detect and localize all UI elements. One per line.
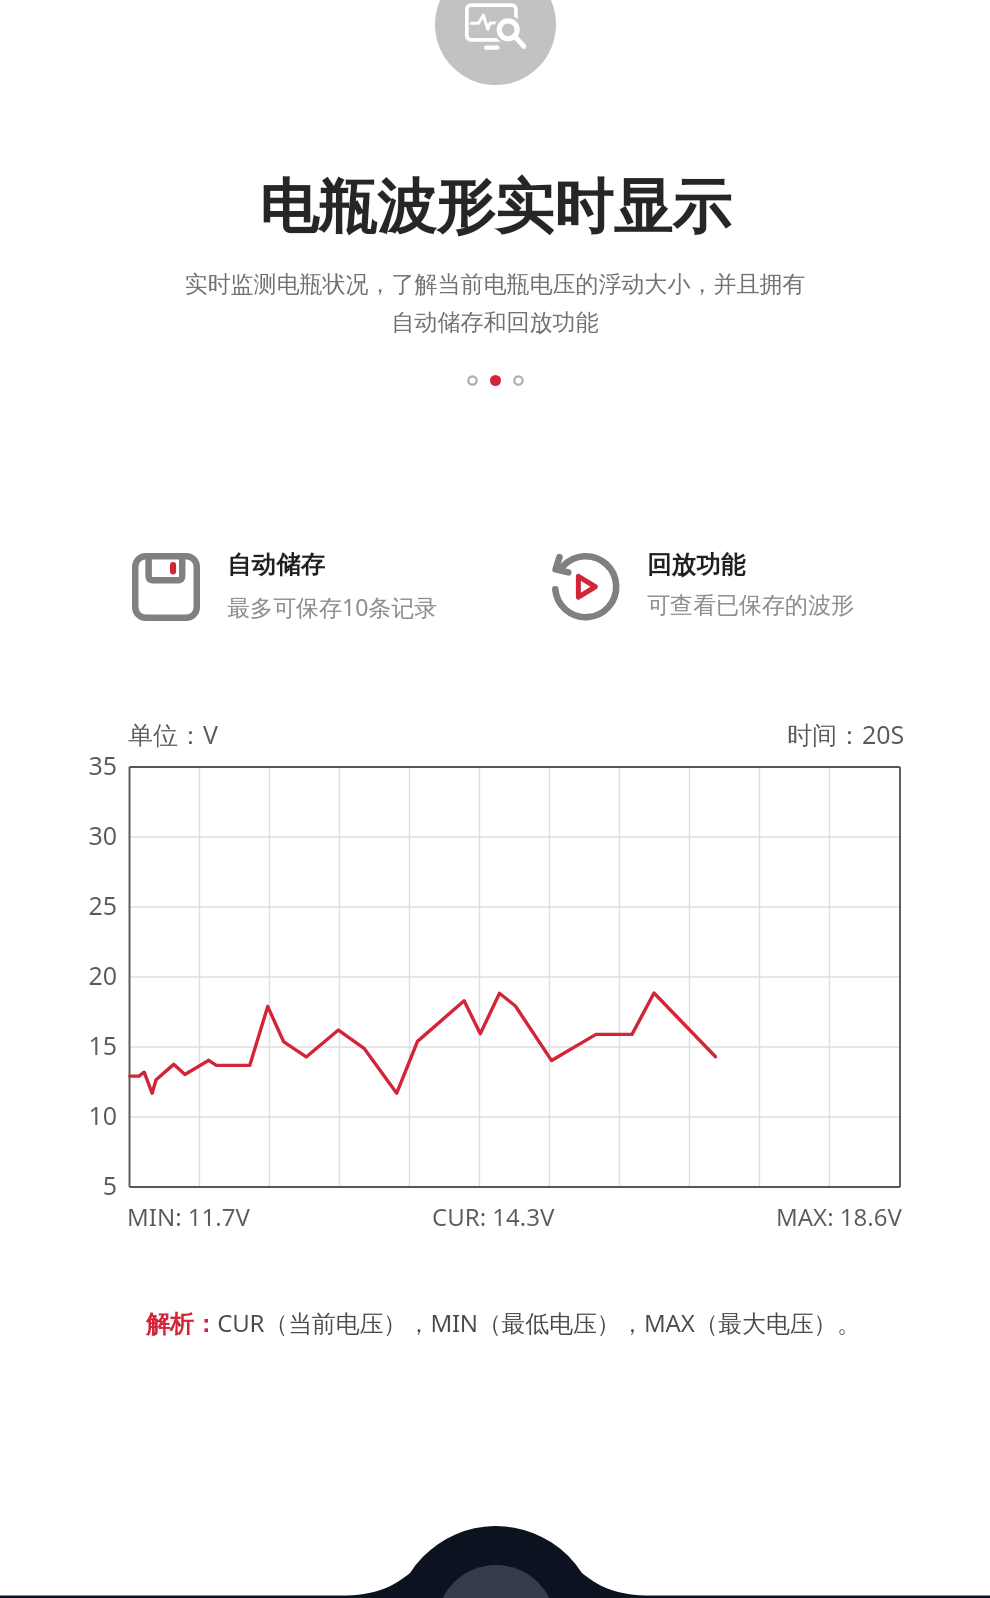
staticText: 25 bbox=[72, 888, 117, 922]
staticText: 5 bbox=[72, 1168, 117, 1202]
button[interactable]: Page 1 bbox=[467, 375, 478, 386]
staticText: 回放功能 bbox=[647, 549, 745, 580]
staticText: 最多可保存10条记录 bbox=[227, 591, 438, 622]
staticText: 可查看已保存的波形 bbox=[647, 591, 854, 620]
staticText: 20 bbox=[72, 958, 117, 992]
staticText: MIN: 11.7V bbox=[127, 1200, 250, 1233]
staticText: 35 bbox=[72, 748, 117, 782]
staticText: 时间：20S bbox=[787, 717, 905, 751]
staticText: 10 bbox=[72, 1098, 117, 1132]
button[interactable]: Page 3 bbox=[513, 375, 524, 386]
staticText: 30 bbox=[72, 818, 117, 852]
staticText: 自动储存 bbox=[227, 549, 325, 580]
other: Replay saved waveform bbox=[551, 551, 621, 621]
other: Auto save bbox=[132, 553, 200, 621]
button[interactable]: Replay saved waveform bbox=[551, 540, 854, 620]
button[interactable]: Page 2, current bbox=[490, 375, 501, 386]
button[interactable]: Auto save bbox=[132, 540, 438, 622]
staticText: 解析：CUR（当前电压），MIN（最低电压），MAX（最大电压）。 bbox=[146, 1306, 861, 1339]
staticText: 实时监测电瓶状况，了解当前电瓶电压的浮动大小，并且拥有 自动储存和回放功能 bbox=[0, 270, 990, 337]
button[interactable]: Real-time waveform monitor bbox=[435, 0, 556, 85]
staticText: MAX: 18.6V bbox=[776, 1200, 902, 1233]
staticText: CUR: 14.3V bbox=[432, 1200, 555, 1233]
staticText: 15 bbox=[72, 1028, 117, 1062]
staticText: 电瓶波形实时显示 bbox=[0, 170, 990, 244]
staticText: 单位：V bbox=[128, 717, 219, 751]
